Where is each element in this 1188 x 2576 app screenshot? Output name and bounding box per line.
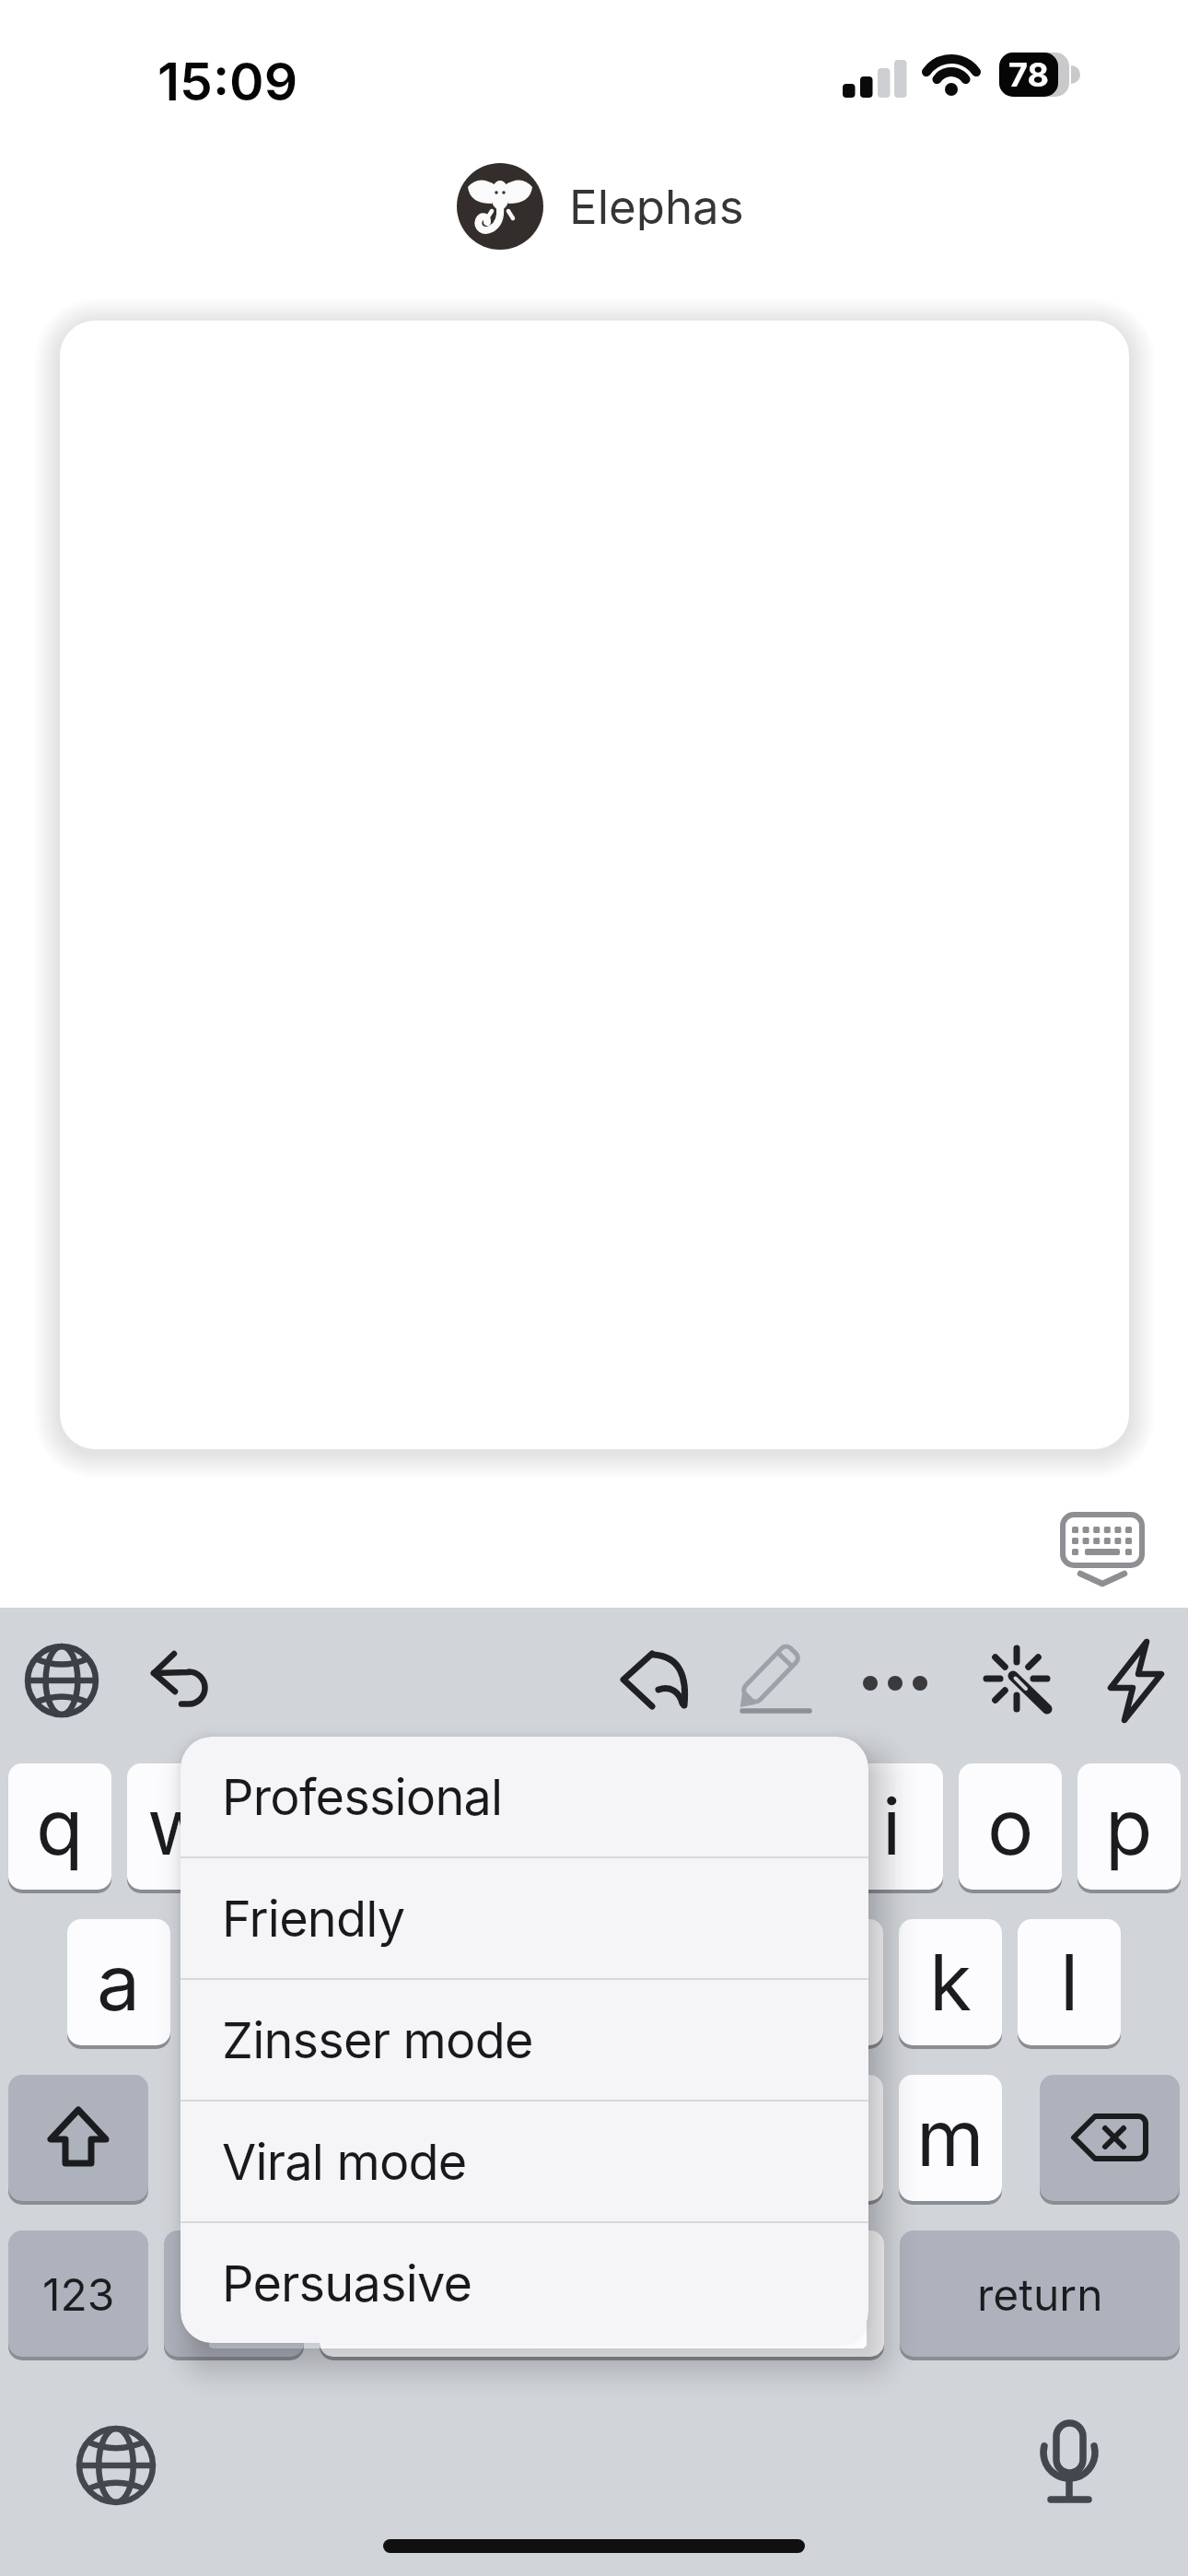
staticText: k bbox=[929, 1936, 973, 2030]
button[interactable] bbox=[1023, 2410, 1115, 2512]
button[interactable] bbox=[612, 1639, 697, 1724]
button[interactable]: v bbox=[542, 2075, 646, 2201]
button[interactable]: w bbox=[127, 1763, 230, 1890]
staticText: Elephas bbox=[569, 179, 744, 230]
button[interactable]: Persuasive bbox=[181, 2223, 868, 2343]
button[interactable] bbox=[70, 2419, 162, 2512]
staticText: 15:09 bbox=[157, 50, 298, 101]
staticText: Zinsser mode bbox=[222, 2010, 533, 2070]
staticText: q bbox=[36, 1780, 84, 1874]
staticText: j bbox=[822, 1936, 842, 2030]
staticText: r bbox=[402, 1780, 431, 1874]
button[interactable]: r bbox=[365, 1763, 468, 1890]
button[interactable]: i bbox=[840, 1763, 943, 1890]
button[interactable]: s bbox=[186, 1919, 289, 2045]
staticText: a bbox=[97, 1936, 141, 2030]
button[interactable]: 123 bbox=[8, 2231, 148, 2357]
button[interactable]: f bbox=[424, 1919, 527, 2045]
button[interactable]: p bbox=[1077, 1763, 1181, 1890]
button[interactable]: b bbox=[661, 2075, 764, 2201]
staticText: return bbox=[977, 2267, 1103, 2321]
button[interactable]: Professional bbox=[181, 1737, 868, 1856]
staticText: m bbox=[916, 2091, 984, 2185]
button[interactable] bbox=[320, 2231, 884, 2357]
button[interactable]: n bbox=[780, 2075, 883, 2201]
staticText: p bbox=[1105, 1780, 1153, 1874]
button[interactable]: Viral mode bbox=[181, 2102, 868, 2221]
button[interactable] bbox=[1093, 1639, 1178, 1724]
staticText: w bbox=[147, 1780, 211, 1874]
staticText: f bbox=[460, 1936, 490, 2030]
staticText: b bbox=[689, 2091, 737, 2185]
button[interactable]: c bbox=[424, 2075, 527, 2201]
staticText: y bbox=[632, 1780, 676, 1874]
staticText: 123 bbox=[42, 2267, 115, 2321]
staticText: s bbox=[217, 1936, 259, 2030]
staticText: n bbox=[809, 2091, 855, 2185]
staticText: Persuasive bbox=[222, 2254, 472, 2313]
staticText: Viral mode bbox=[222, 2132, 467, 2192]
staticText: e bbox=[275, 1780, 320, 1874]
staticText: c bbox=[453, 2091, 497, 2185]
staticText: 78 bbox=[1008, 54, 1049, 95]
staticText: d bbox=[332, 1936, 380, 2030]
button[interactable]: y bbox=[602, 1763, 705, 1890]
staticText: h bbox=[690, 1936, 736, 2030]
staticText: o bbox=[987, 1780, 1034, 1874]
button[interactable]: o bbox=[959, 1763, 1062, 1890]
button[interactable]: h bbox=[661, 1919, 764, 2045]
staticText: Professional bbox=[222, 1767, 503, 1827]
staticText: i bbox=[882, 1780, 902, 1874]
button[interactable]: k bbox=[899, 1919, 1002, 2045]
button[interactable]: a bbox=[67, 1919, 170, 2045]
button[interactable] bbox=[732, 1638, 817, 1723]
button[interactable] bbox=[19, 1638, 104, 1723]
button[interactable]: return bbox=[900, 2231, 1180, 2357]
button[interactable] bbox=[164, 2231, 304, 2357]
button[interactable]: l bbox=[1018, 1919, 1121, 2045]
button[interactable] bbox=[8, 2075, 148, 2201]
staticText: l bbox=[1060, 1936, 1079, 2030]
button[interactable]: Zinsser mode bbox=[181, 1980, 868, 2100]
button[interactable]: g bbox=[542, 1919, 646, 2045]
button[interactable] bbox=[1040, 2075, 1180, 2201]
button[interactable]: j bbox=[780, 1919, 883, 2045]
button[interactable]: m bbox=[899, 2075, 1002, 2201]
staticText: t bbox=[522, 1780, 548, 1874]
staticText: Friendly bbox=[222, 1889, 405, 1949]
button[interactable]: e bbox=[246, 1763, 349, 1890]
button[interactable] bbox=[139, 1641, 224, 1726]
button[interactable]: u bbox=[721, 1763, 824, 1890]
button[interactable]: x bbox=[305, 2075, 408, 2201]
button[interactable] bbox=[853, 1641, 938, 1726]
button[interactable]: t bbox=[483, 1763, 587, 1890]
button[interactable] bbox=[974, 1636, 1059, 1721]
staticText: x bbox=[335, 2091, 378, 2185]
button[interactable]: z bbox=[186, 2075, 289, 2201]
staticText: v bbox=[572, 2091, 616, 2185]
staticText: u bbox=[750, 1780, 796, 1874]
staticText: z bbox=[216, 2091, 260, 2185]
button[interactable]: Friendly bbox=[181, 1858, 868, 1978]
staticText: g bbox=[570, 1936, 618, 2030]
button[interactable]: d bbox=[305, 1919, 408, 2045]
button[interactable]: q bbox=[8, 1763, 111, 1890]
button[interactable] bbox=[1057, 1509, 1149, 1588]
